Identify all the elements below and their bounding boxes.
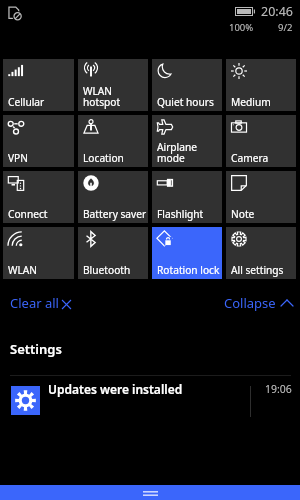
- staticText: Camera: [231, 151, 269, 165]
- button[interactable]: Updates were installed: [0, 386, 300, 428]
- staticText: Collapse: [224, 294, 276, 312]
- staticText: Quiet hours: [157, 95, 214, 109]
- staticText: Flashlight: [157, 207, 204, 221]
- button[interactable]: Battery saver: [78, 171, 148, 223]
- staticText: Connect: [8, 207, 48, 221]
- staticText: Location: [83, 151, 124, 165]
- button[interactable]: Menu: [136, 486, 164, 500]
- button[interactable]: Cellular: [3, 59, 74, 111]
- staticText: Rotation lock: [157, 263, 220, 277]
- staticText: VPN: [8, 151, 29, 165]
- staticText: Medium: [231, 95, 271, 109]
- staticText: 19:06: [265, 382, 292, 396]
- button[interactable]: All settings: [226, 227, 296, 279]
- staticText: Clear all: [10, 294, 59, 312]
- staticText: 100%: [229, 21, 254, 34]
- button[interactable]: Clear all: [0, 294, 79, 312]
- button[interactable]: Rotation lock: [152, 227, 222, 279]
- button[interactable]: Bluetooth: [78, 227, 148, 279]
- button[interactable]: Medium: [226, 59, 296, 111]
- button[interactable]: Collapse: [216, 294, 300, 312]
- button[interactable]: Do not disturb: [5, 4, 23, 22]
- staticText: Bluetooth: [83, 263, 131, 277]
- staticText: All settings: [231, 263, 284, 277]
- staticText: Airplane mode: [157, 140, 197, 165]
- staticText: 20:46: [261, 3, 293, 20]
- button[interactable]: Airplane mode: [152, 115, 222, 167]
- button[interactable]: Flashlight: [152, 171, 222, 223]
- button[interactable]: Camera: [226, 115, 296, 167]
- staticText: Settings: [10, 340, 62, 358]
- staticText: WLAN: [8, 263, 38, 277]
- button[interactable]: WLAN: [3, 227, 74, 279]
- staticText: Updates were installed: [48, 381, 183, 397]
- staticText: WLAN hotspot: [83, 84, 121, 109]
- button[interactable]: WLAN hotspot: [78, 59, 148, 111]
- staticText: 9/2: [278, 21, 293, 34]
- button[interactable]: Note: [226, 171, 296, 223]
- staticText: Cellular: [8, 95, 45, 109]
- staticText: Battery saver: [83, 207, 147, 221]
- button[interactable]: VPN: [3, 115, 74, 167]
- button[interactable]: Connect: [3, 171, 74, 223]
- button[interactable]: Quiet hours: [152, 59, 222, 111]
- staticText: Note: [231, 207, 255, 221]
- button[interactable]: Location: [78, 115, 148, 167]
